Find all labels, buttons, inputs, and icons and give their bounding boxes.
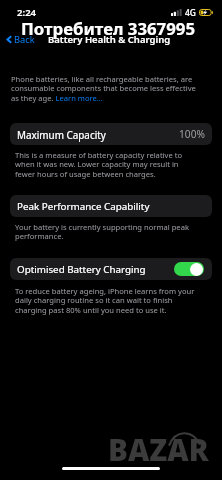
staticText: BAZAR: [108, 429, 209, 469]
staticText: 2:24: [17, 6, 37, 19]
staticText: Battery Health & Charging: [48, 33, 171, 46]
staticText: Optimised Battery Charging: [17, 263, 146, 276]
staticText: Your battery is currently supporting nor…: [15, 222, 197, 242]
button[interactable]: Peak Performance Capability: [10, 195, 212, 217]
staticText: Phone batteries, like all rechargeable b…: [11, 74, 201, 104]
staticText: Потребител 3367995: [21, 17, 196, 40]
staticText: 100%: [179, 127, 205, 141]
button[interactable]: Optimised Battery Charging: [10, 258, 212, 280]
button[interactable]: Maximum Capacity: [10, 123, 212, 145]
staticText: 4G: [185, 7, 196, 18]
button[interactable]: Back: [5, 33, 35, 46]
staticText: This is a measure of battery capacity re…: [15, 150, 197, 180]
button[interactable]: Optimised Battery Charging toggle: [174, 262, 204, 276]
staticText: Maximum Capacity: [17, 128, 106, 141]
staticText: To reduce battery ageing, iPhone learns …: [15, 286, 197, 316]
staticText: Peak Performance Capability: [17, 200, 150, 213]
staticText: Back: [14, 33, 35, 46]
